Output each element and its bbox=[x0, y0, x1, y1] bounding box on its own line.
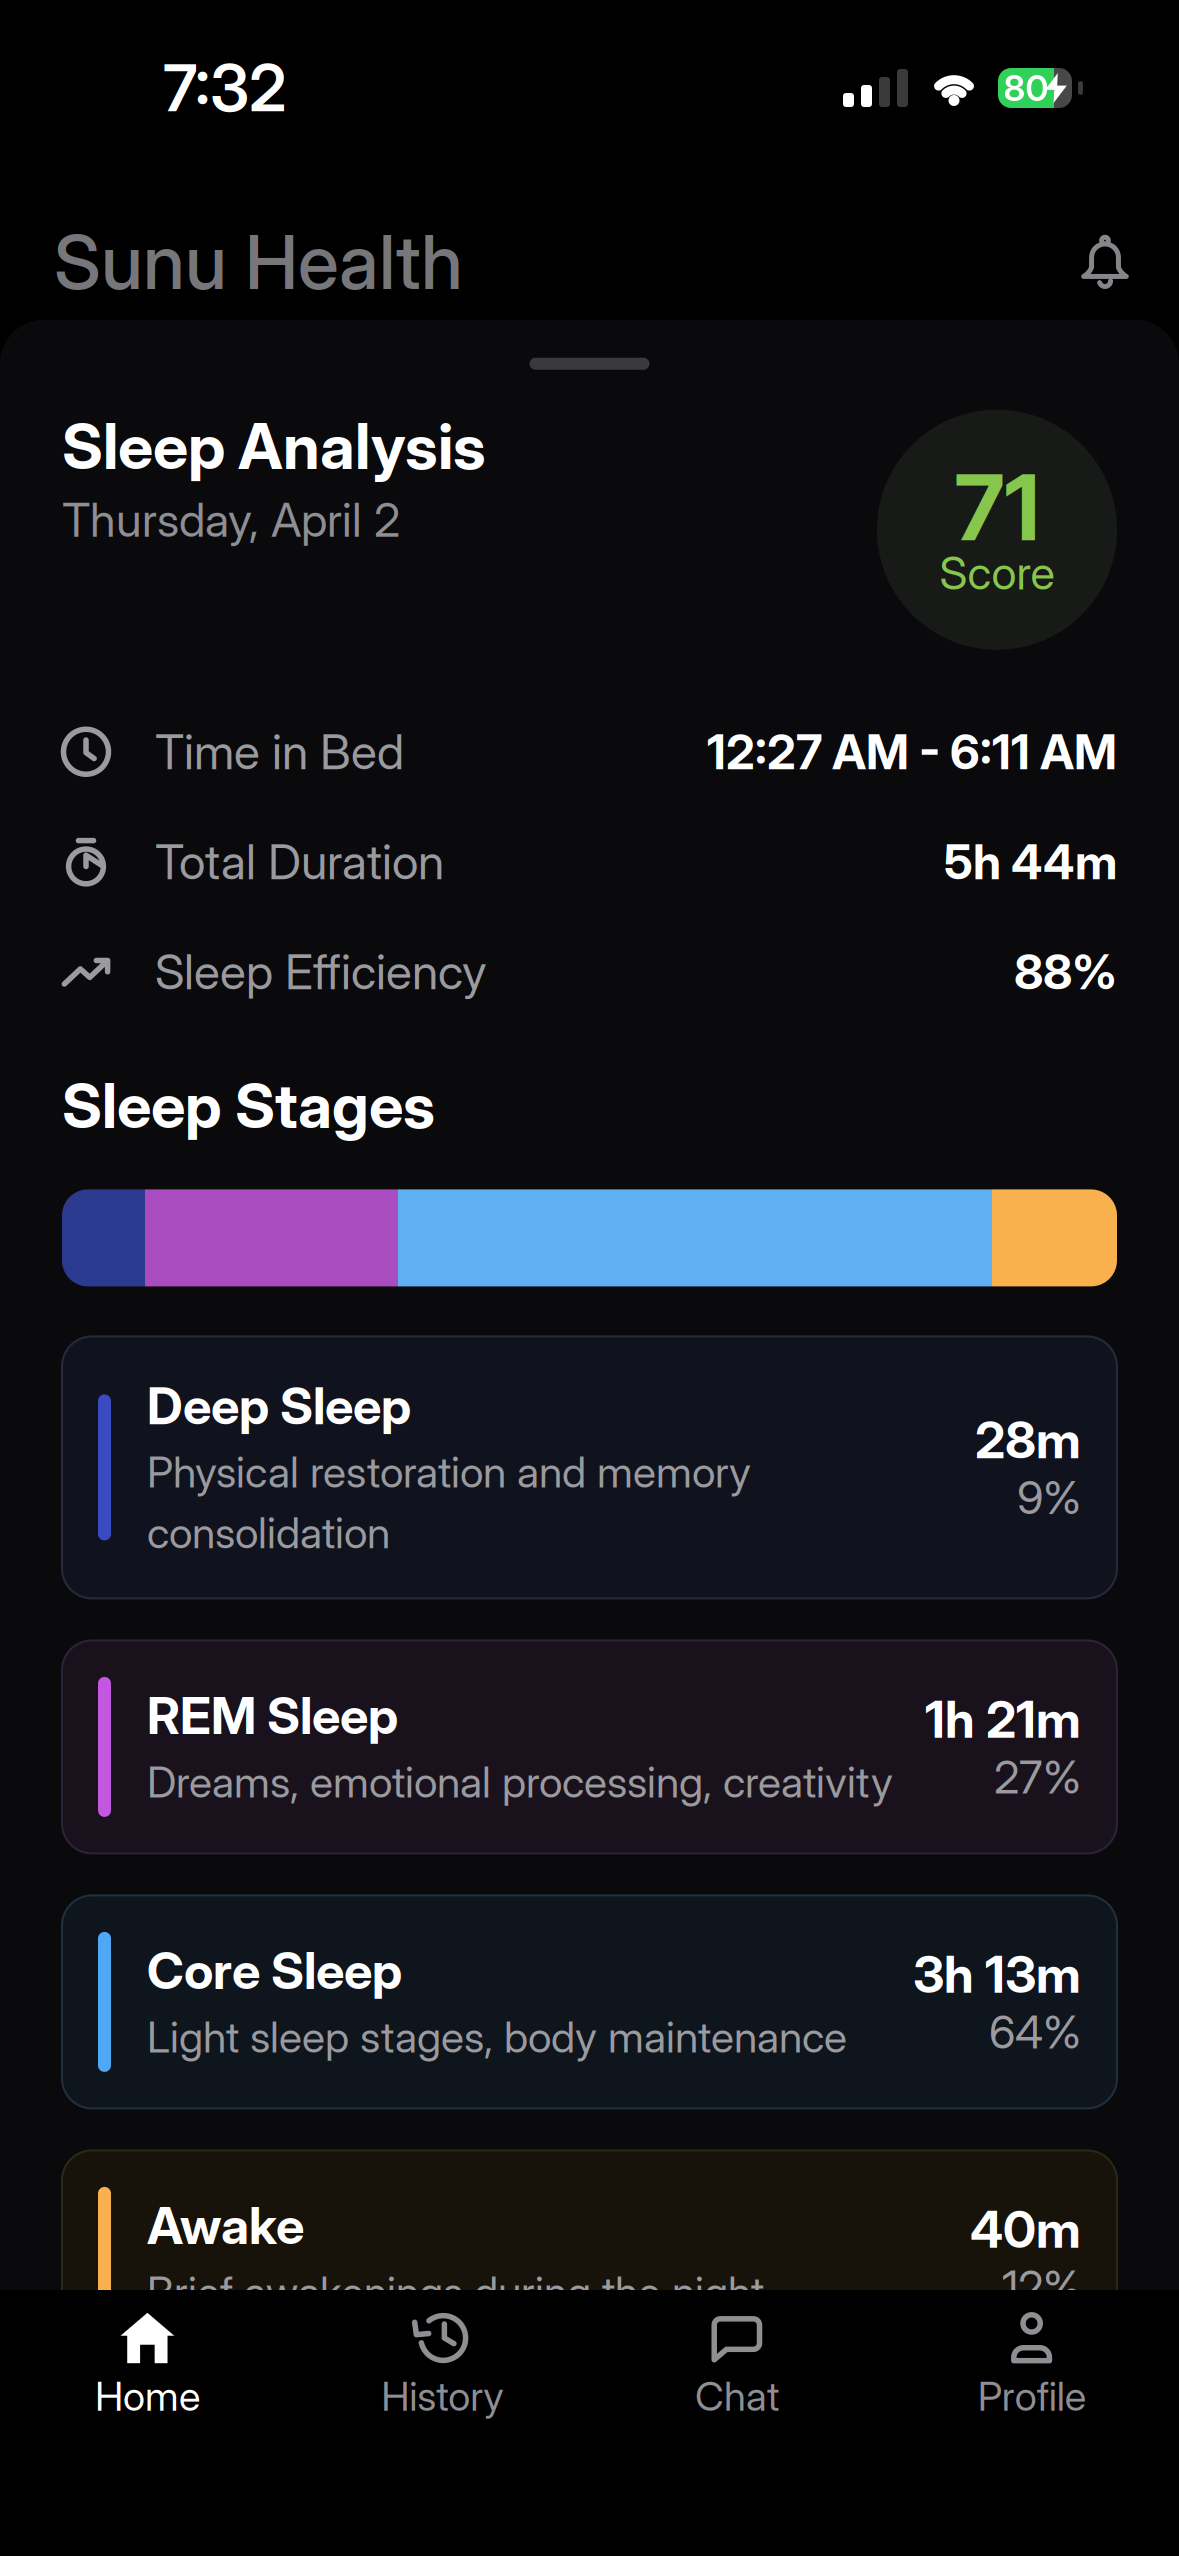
staticText: Dreams, emotional processing, creativity bbox=[147, 1762, 893, 1801]
staticText: 40m bbox=[970, 2206, 1081, 2252]
staticText: 7:32 bbox=[163, 59, 287, 117]
button[interactable]: Notifications bbox=[1077, 234, 1133, 290]
button[interactable]: Home bbox=[0, 2310, 295, 2414]
staticText: 80 bbox=[1003, 72, 1048, 104]
staticText: 1h 21m bbox=[925, 1696, 1081, 1742]
staticText: History bbox=[381, 2378, 503, 2414]
staticText: Brief awakenings during the night bbox=[147, 2272, 764, 2311]
staticText: 12% bbox=[1002, 2266, 1081, 2307]
staticText: Physical restoration and memory bbox=[147, 1453, 751, 1491]
staticText: Sunu Health bbox=[54, 228, 463, 296]
staticText: Sleep Efficiency bbox=[155, 950, 487, 994]
staticText: Total Duration bbox=[155, 840, 444, 884]
staticText: Score bbox=[939, 552, 1054, 593]
staticText: Core Sleep bbox=[147, 1948, 402, 1994]
staticText: Sleep Stages bbox=[62, 1078, 435, 1133]
staticText: 12:27 AM - 6:11 AM bbox=[707, 730, 1117, 774]
staticText: Time in Bed bbox=[155, 730, 404, 774]
staticText: Awake bbox=[147, 2203, 304, 2249]
staticText: 3h 13m bbox=[913, 1951, 1081, 1997]
staticText: 88% bbox=[1014, 950, 1117, 994]
staticText: 27% bbox=[994, 1756, 1081, 1797]
staticText: Home bbox=[95, 2378, 200, 2414]
staticText: Deep Sleep bbox=[147, 1383, 411, 1429]
staticText: REM Sleep bbox=[147, 1693, 398, 1739]
staticText: Light sleep stages, body maintenance bbox=[147, 2017, 847, 2056]
staticText: 9% bbox=[1017, 1477, 1081, 1518]
staticText: 64% bbox=[989, 2011, 1081, 2052]
staticText: Profile bbox=[978, 2378, 1086, 2414]
staticText: Sleep Analysis bbox=[62, 418, 486, 475]
staticText: Thursday, April 2 bbox=[62, 499, 400, 541]
staticText: consolidation bbox=[147, 1513, 390, 1552]
button[interactable]: History bbox=[295, 2310, 590, 2414]
staticText: Chat bbox=[695, 2378, 779, 2414]
button[interactable]: Chat bbox=[589, 2310, 884, 2414]
staticText: 71 bbox=[954, 466, 1039, 548]
staticText: 5h 44m bbox=[944, 840, 1117, 884]
button[interactable]: Profile bbox=[884, 2310, 1179, 2414]
staticText: 28m bbox=[975, 1417, 1081, 1463]
